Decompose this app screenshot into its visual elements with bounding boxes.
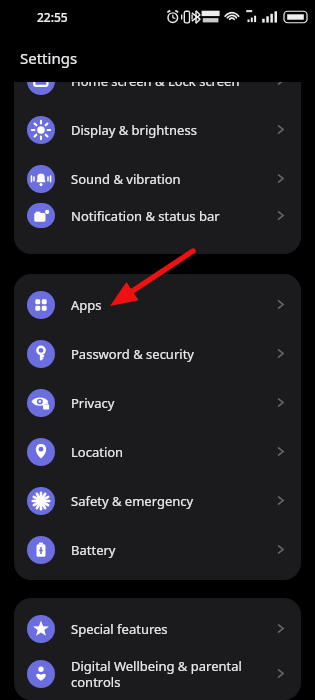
button[interactable]: Safety & emergency xyxy=(14,476,301,525)
staticText: 22:55 xyxy=(37,9,68,25)
staticText: Apps xyxy=(71,296,273,314)
staticText: Location xyxy=(71,443,273,461)
staticText: Settings xyxy=(20,48,78,68)
staticText: Home screen & Lock screen xyxy=(71,82,273,90)
button[interactable]: Privacy xyxy=(14,378,301,427)
staticText: Display & brightness xyxy=(71,121,273,139)
staticText: Digital Wellbeing & parental controls xyxy=(71,657,273,690)
staticText: Safety & emergency xyxy=(71,492,273,510)
staticText: Notification & status bar xyxy=(71,207,273,225)
staticText: Password & security xyxy=(71,345,273,363)
button[interactable]: Location xyxy=(14,427,301,476)
button[interactable]: Home screen & Lock screen xyxy=(14,82,301,105)
staticText: Special features xyxy=(71,620,273,638)
staticText: Sound & vibration xyxy=(71,170,273,188)
staticText: Privacy xyxy=(71,394,273,412)
staticText: Battery xyxy=(71,541,273,559)
button[interactable]: Battery xyxy=(14,525,301,574)
button[interactable]: Notification & status bar xyxy=(14,203,301,228)
button[interactable]: Sound & vibration xyxy=(14,154,301,203)
button[interactable]: Password & security xyxy=(14,329,301,378)
button[interactable]: Special features xyxy=(14,604,301,653)
button[interactable]: Apps xyxy=(14,280,301,329)
button[interactable]: Digital Wellbeing & parental controls xyxy=(14,653,301,694)
button[interactable]: Display & brightness xyxy=(14,105,301,154)
